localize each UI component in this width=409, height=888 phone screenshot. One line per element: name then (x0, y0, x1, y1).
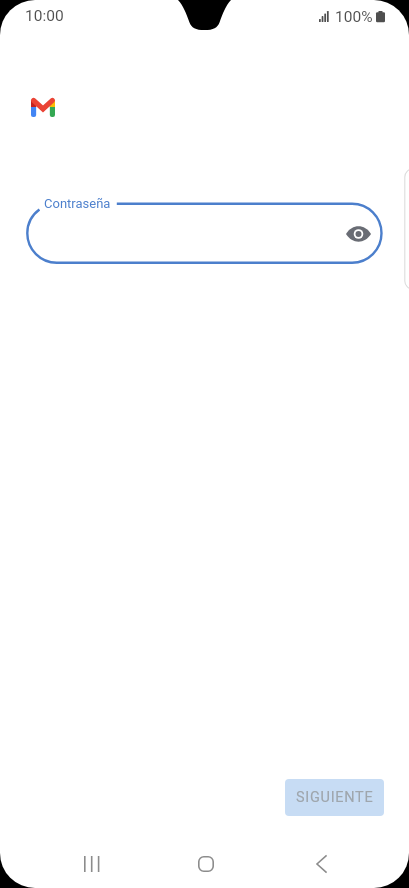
button[interactable]: Atrás (286, 840, 356, 888)
staticText: 10:00 (25, 7, 64, 25)
staticText: Contraseña (44, 196, 111, 211)
button[interactable]: Mostrar contraseña (338, 214, 378, 254)
button[interactable]: Inicio (171, 840, 241, 888)
button[interactable]: Recientes (57, 840, 127, 888)
staticText: 100% (335, 8, 373, 26)
button[interactable]: SIGUIENTE (285, 779, 384, 816)
staticText: SIGUIENTE (296, 789, 374, 806)
